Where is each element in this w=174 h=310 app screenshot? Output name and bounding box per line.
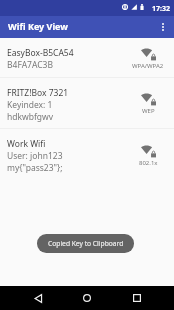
button[interactable]: EasyBox-B5CA54 [0, 38, 174, 77]
button[interactable]: Work Wifi [0, 129, 174, 180]
button[interactable]: More options [152, 16, 174, 38]
button[interactable]: Copied Key to Clipboard [37, 234, 134, 253]
staticText: WEP [142, 107, 155, 115]
staticText: Keyindex: 1 [7, 99, 53, 111]
button[interactable]: Recent apps [125, 286, 149, 310]
staticText: hdkwbfgwv [7, 111, 54, 123]
staticText: Wifi Key View [8, 20, 68, 32]
staticText: B4FA7AC3B [7, 59, 53, 71]
staticText: my{"pass23"}; [7, 162, 63, 174]
staticText: User: john123 [7, 150, 63, 162]
button[interactable]: Home [75, 286, 99, 310]
staticText: 17:32 [152, 4, 170, 14]
button[interactable]: FRITZ!Box 7321 [0, 78, 174, 128]
staticText: Work Wifi [7, 138, 46, 150]
staticText: Copied Key to Clipboard [48, 239, 124, 248]
staticText: EasyBox-B5CA54 [7, 47, 74, 59]
staticText: FRITZ!Box 7321 [7, 87, 69, 99]
staticText: 802.1x [139, 159, 158, 167]
button[interactable]: Back [26, 286, 50, 310]
staticText: WPA/WPA2 [132, 62, 164, 70]
